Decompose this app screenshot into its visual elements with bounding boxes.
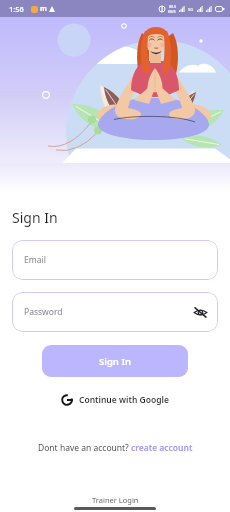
staticText: Continue with Google [79,394,169,406]
staticText: Email [24,254,46,266]
staticText: Dont have an account? [38,442,131,454]
staticText: 88.0 [169,4,176,9]
button[interactable]: Email [12,240,218,280]
button[interactable]: Password [12,292,218,332]
staticText: Password [24,306,63,318]
button[interactable]: Sign In [42,345,188,377]
staticText: m [40,4,47,14]
button[interactable]: Continue with Google [12,394,218,406]
staticText: KB/S [168,9,176,14]
staticText: Sign In [99,355,131,368]
staticText: 1:56 [9,4,24,14]
staticText: Sign In [12,208,58,227]
button[interactable]: create account [131,442,193,454]
staticText: 5G [188,7,194,12]
button[interactable]: Toggle password visibility [193,305,208,320]
button[interactable]: Trainer Login [92,495,139,505]
